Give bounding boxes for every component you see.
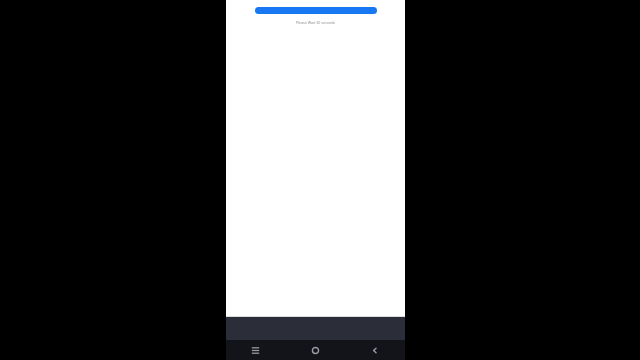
staticText: Please Wait 30 seconds xyxy=(226,20,405,25)
button[interactable] xyxy=(255,7,377,14)
button[interactable]: Back xyxy=(345,340,405,360)
button[interactable]: Home xyxy=(285,340,345,360)
button[interactable]: Recent apps xyxy=(226,340,285,360)
